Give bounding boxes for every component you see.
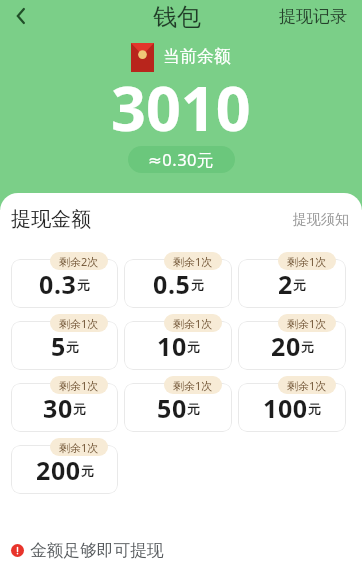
staticText: 50 bbox=[157, 391, 187, 425]
staticText: 剩余2次 bbox=[59, 254, 99, 269]
staticText: 元 bbox=[191, 277, 204, 293]
staticText: 元 bbox=[301, 339, 314, 355]
button[interactable]: 提现须知 bbox=[293, 211, 349, 229]
button[interactable]: 50 bbox=[124, 383, 232, 432]
staticText: 钱包 bbox=[153, 2, 201, 32]
button[interactable]: 提现记录 bbox=[279, 6, 347, 27]
staticText: 元 bbox=[187, 401, 200, 417]
staticText: 元 bbox=[66, 339, 79, 355]
staticText: 10 bbox=[157, 329, 187, 363]
staticText: 元 bbox=[187, 339, 200, 355]
staticText: 元 bbox=[81, 463, 94, 479]
staticText: 剩余1次 bbox=[173, 316, 213, 331]
staticText: 元 bbox=[308, 401, 321, 417]
staticText: 元 bbox=[77, 277, 90, 293]
button[interactable]: 30 bbox=[11, 383, 118, 432]
button[interactable]: 0.3 bbox=[11, 259, 118, 308]
staticText: 0.5 bbox=[153, 267, 191, 301]
button[interactable]: 20 bbox=[238, 321, 346, 370]
staticText: 元 bbox=[293, 277, 306, 293]
staticText: 2 bbox=[278, 267, 293, 301]
button[interactable]: 2 bbox=[238, 259, 346, 308]
staticText: 0.3 bbox=[39, 267, 77, 301]
staticText: 30 bbox=[43, 391, 73, 425]
staticText: 剩余1次 bbox=[287, 254, 327, 269]
staticText: 剩余1次 bbox=[287, 316, 327, 331]
staticText: 金额足够即可提现 bbox=[30, 540, 164, 561]
staticText: 剩余1次 bbox=[287, 378, 327, 393]
staticText: 剩余1次 bbox=[173, 254, 213, 269]
button[interactable]: 100 bbox=[238, 383, 346, 432]
staticText: 20 bbox=[271, 329, 301, 363]
staticText: 200 bbox=[36, 453, 81, 487]
staticText: 剩余1次 bbox=[59, 440, 99, 455]
staticText: 剩余1次 bbox=[59, 378, 99, 393]
staticText: 剩余1次 bbox=[59, 316, 99, 331]
staticText: ≈0.30元 bbox=[148, 148, 215, 171]
button[interactable]: 200 bbox=[11, 445, 118, 494]
button[interactable]: 0.5 bbox=[124, 259, 232, 308]
button[interactable]: 5 bbox=[11, 321, 118, 370]
staticText: 3010 bbox=[111, 66, 251, 149]
staticText: 元 bbox=[73, 401, 86, 417]
staticText: 5 bbox=[51, 329, 66, 363]
staticText: 提现金额 bbox=[11, 207, 91, 232]
staticText: 当前余额 bbox=[163, 46, 231, 67]
staticText: 100 bbox=[263, 391, 308, 425]
button[interactable]: 10 bbox=[124, 321, 232, 370]
button[interactable]: Back bbox=[4, 2, 36, 34]
staticText: 剩余1次 bbox=[173, 378, 213, 393]
